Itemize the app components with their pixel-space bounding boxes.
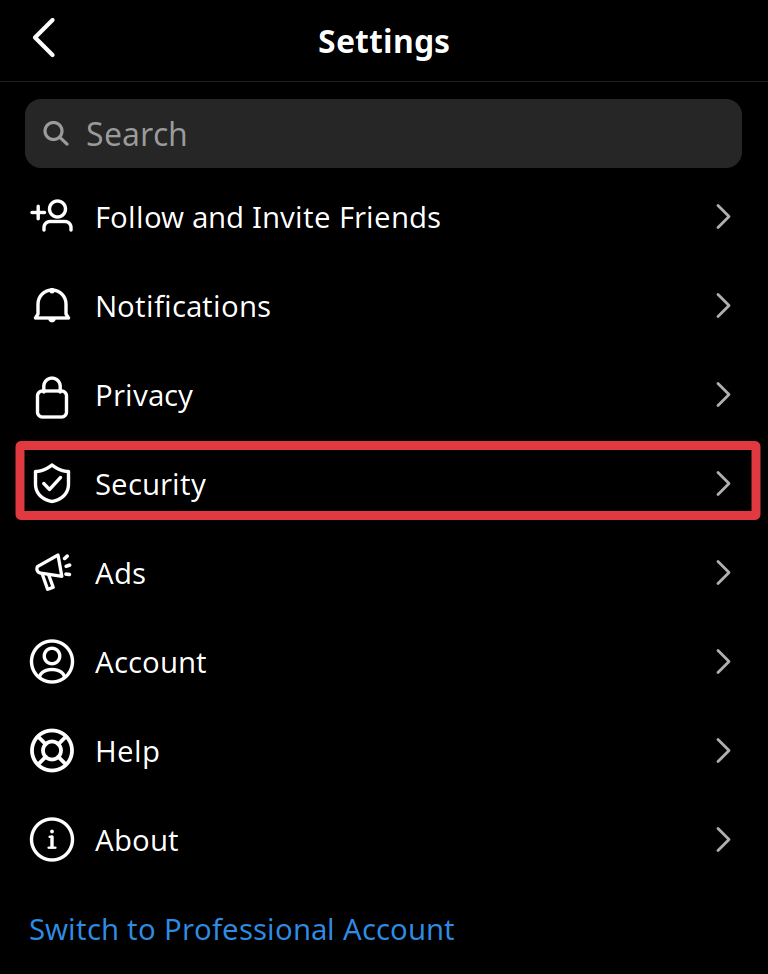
button[interactable]: Privacy [0, 350, 768, 439]
button[interactable]: Back [15, 11, 73, 69]
staticText: Search [86, 112, 188, 155]
staticText: Security [95, 464, 206, 503]
button[interactable]: About [0, 795, 768, 884]
button[interactable]: Account [0, 617, 768, 706]
button[interactable]: Follow and Invite Friends [0, 172, 768, 261]
staticText: Account [95, 642, 207, 681]
button[interactable]: Help [0, 706, 768, 795]
staticText: Follow and Invite Friends [95, 197, 441, 236]
button[interactable]: Notifications [0, 261, 768, 350]
staticText: Privacy [95, 375, 193, 414]
button[interactable]: Security [0, 439, 768, 528]
staticText: Notifications [95, 286, 271, 325]
staticText: Settings [318, 19, 450, 62]
staticText: About [95, 820, 179, 859]
staticText: Ads [95, 553, 146, 592]
button[interactable]: Switch to Professional Account [0, 884, 768, 968]
staticText: Switch to Professional Account [29, 909, 455, 948]
button[interactable]: Ads [0, 528, 768, 617]
staticText: Help [95, 731, 160, 770]
